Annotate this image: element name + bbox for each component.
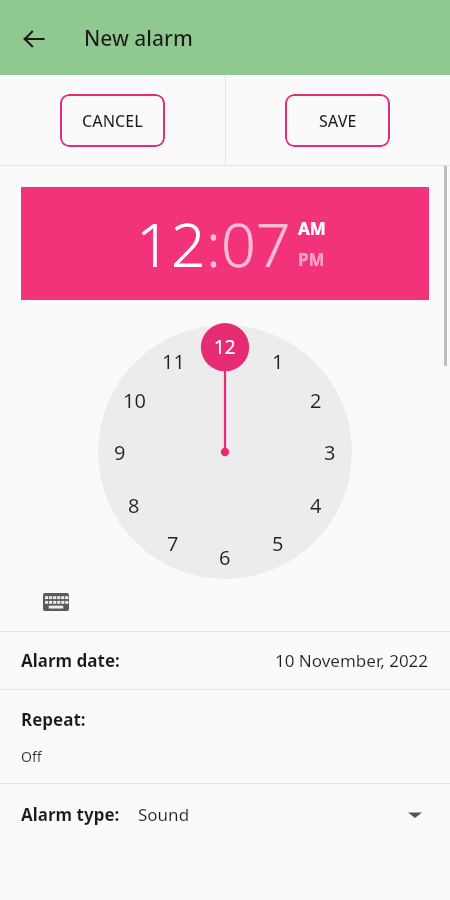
staticText: 4 bbox=[310, 492, 322, 519]
staticText: 9 bbox=[114, 439, 126, 466]
button[interactable]: Switch to keyboard input bbox=[38, 584, 74, 620]
staticText: Alarm type: bbox=[21, 803, 120, 826]
button[interactable]: CANCEL bbox=[60, 94, 165, 147]
button[interactable]: 12 bbox=[21, 187, 429, 300]
staticText: Alarm date: bbox=[21, 649, 120, 672]
button[interactable]: Repeat: bbox=[0, 690, 450, 783]
staticText: SAVE bbox=[319, 110, 357, 132]
staticText: 6 bbox=[219, 544, 231, 571]
button[interactable]: Back bbox=[10, 15, 58, 63]
staticText: 3 bbox=[324, 439, 336, 466]
staticText: PM bbox=[298, 248, 325, 271]
button[interactable]: SAVE bbox=[285, 94, 390, 147]
staticText: 12 bbox=[136, 202, 206, 285]
staticText: New alarm bbox=[84, 24, 193, 53]
staticText: Off bbox=[21, 747, 42, 766]
staticText: 11 bbox=[162, 348, 185, 375]
staticText: Sound bbox=[138, 803, 190, 826]
staticText: AM bbox=[298, 217, 326, 240]
staticText: CANCEL bbox=[82, 110, 143, 132]
staticText: 10 November, 2022 bbox=[275, 649, 429, 672]
staticText: 1 bbox=[272, 348, 284, 375]
staticText: 5 bbox=[272, 530, 284, 557]
staticText: : bbox=[206, 202, 221, 285]
button[interactable]: Alarm date: bbox=[0, 632, 450, 689]
button[interactable]: Alarm type: bbox=[0, 784, 450, 844]
staticText: Repeat: bbox=[21, 708, 86, 731]
staticText: 07 bbox=[221, 202, 291, 285]
staticText: 12 bbox=[214, 334, 236, 360]
staticText: 10 bbox=[123, 387, 146, 414]
staticText: 8 bbox=[128, 492, 140, 519]
staticText: 2 bbox=[310, 387, 322, 414]
staticText: 7 bbox=[167, 530, 179, 557]
